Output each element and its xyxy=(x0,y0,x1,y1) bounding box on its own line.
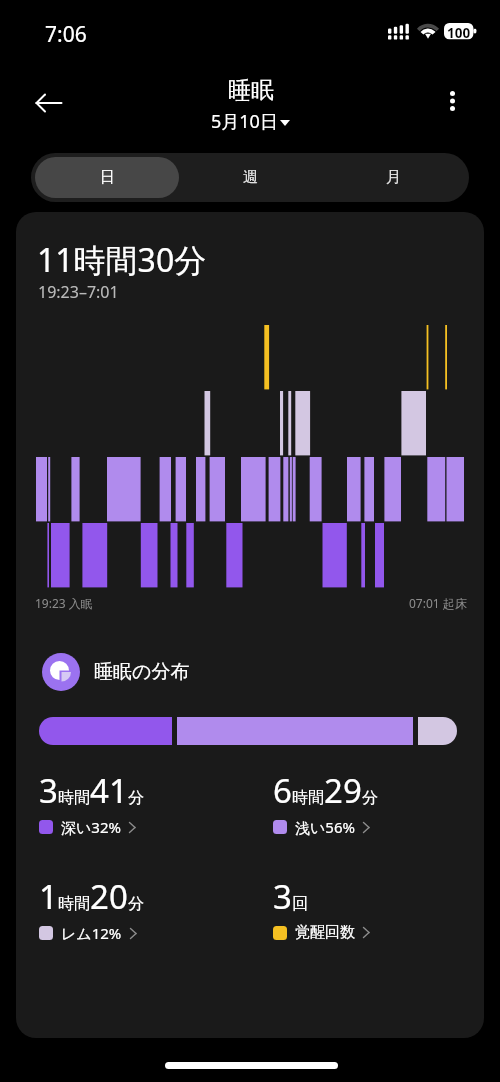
button[interactable]: 1 xyxy=(39,874,254,943)
staticText: 日 xyxy=(100,168,115,187)
staticText: 7:06 xyxy=(45,20,87,49)
staticText: 覚醒回数 xyxy=(295,923,355,942)
button[interactable]: 日 xyxy=(35,157,179,198)
staticText: 19:23 入眠 xyxy=(35,595,93,611)
staticText: 深い32% xyxy=(61,817,121,837)
staticText: 浅い56% xyxy=(295,817,355,837)
button[interactable]: More options xyxy=(434,83,470,119)
staticText: 41 xyxy=(90,768,128,813)
staticText: 時間 xyxy=(292,788,324,808)
staticText: 時間 xyxy=(58,894,90,914)
staticText: 分 xyxy=(362,788,378,808)
staticText: 睡眠の分布 xyxy=(94,660,190,684)
staticText: 29 xyxy=(324,768,362,813)
staticText: 回 xyxy=(292,894,308,914)
staticText: 1 xyxy=(39,874,58,919)
staticText: 100 xyxy=(447,24,471,41)
staticText: 分 xyxy=(128,894,144,914)
button[interactable]: Back xyxy=(29,83,69,123)
staticText: 3 xyxy=(273,874,292,919)
staticText: 分 xyxy=(128,788,144,808)
staticText: 5月10日 xyxy=(211,109,278,134)
staticText: 07:01 起床 xyxy=(409,595,467,611)
staticText: 20 xyxy=(90,874,128,919)
button[interactable]: 6 xyxy=(273,768,484,837)
staticText: 睡眠 xyxy=(228,76,274,105)
staticText: 11時間30分 xyxy=(37,238,207,282)
staticText: 時間 xyxy=(58,788,90,808)
button[interactable]: 月 xyxy=(322,157,465,198)
staticText: 3 xyxy=(39,768,58,813)
staticText: レム12% xyxy=(61,923,122,943)
button[interactable]: 3 xyxy=(273,874,484,942)
staticText: 19:23–7:01 xyxy=(38,281,119,303)
button[interactable]: 週 xyxy=(179,157,322,198)
button[interactable]: 3 xyxy=(39,768,254,837)
staticText: 6 xyxy=(273,768,292,813)
staticText: 月 xyxy=(386,168,401,187)
staticText: 週 xyxy=(243,168,258,187)
